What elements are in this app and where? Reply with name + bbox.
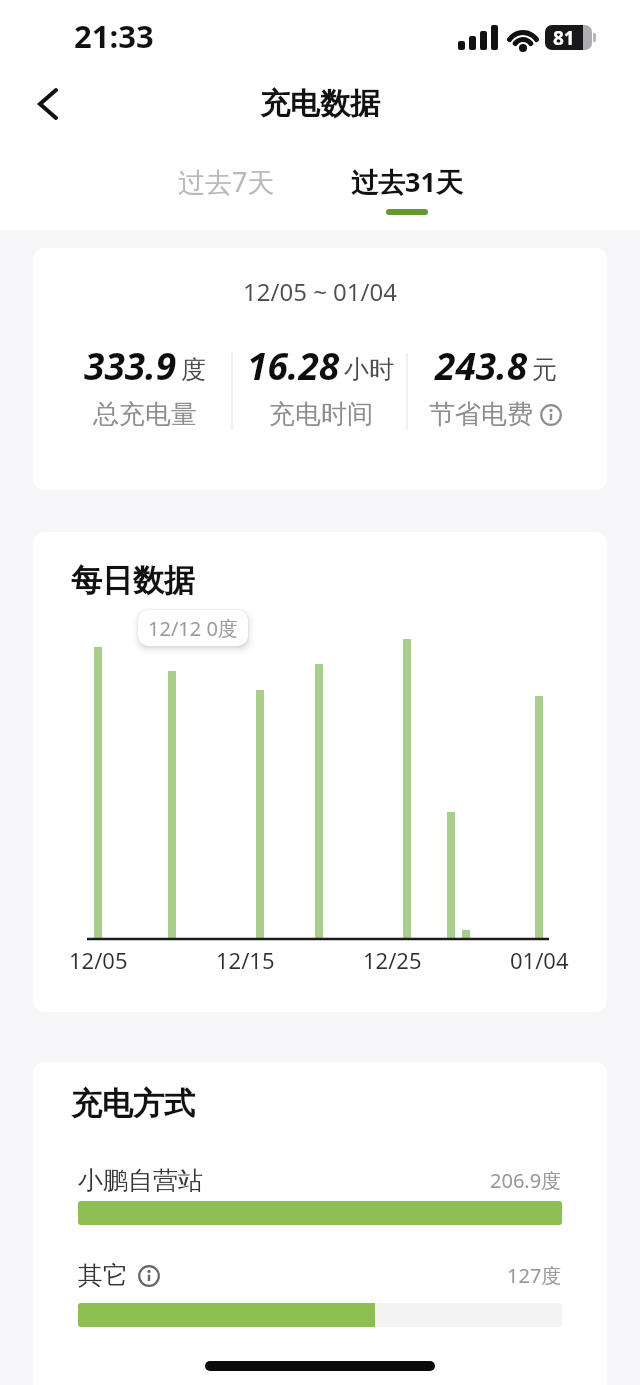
- staticText: 12/25: [363, 945, 422, 975]
- staticText: 01/04: [510, 945, 569, 975]
- staticText: 充电方式: [71, 1084, 195, 1123]
- staticText: 243.8: [435, 340, 528, 390]
- staticText: 21:33: [74, 15, 154, 57]
- staticText: 小鹏自营站: [78, 1165, 203, 1196]
- button[interactable]: 过去7天: [178, 163, 275, 200]
- staticText: 206.9度: [490, 1167, 562, 1194]
- staticText: 充电数据: [260, 85, 380, 123]
- staticText: 度: [181, 354, 206, 385]
- staticText: 每日数据: [71, 561, 195, 600]
- button[interactable]: 过去31天: [351, 163, 463, 215]
- staticText: 12/15: [216, 945, 275, 975]
- staticText: 12/05: [69, 945, 128, 975]
- staticText: 元: [532, 354, 557, 385]
- staticText: 充电时间: [269, 398, 373, 431]
- staticText: 总充电量: [93, 398, 197, 431]
- staticText: 12/12 0度: [148, 615, 238, 642]
- staticText: 127度: [507, 1262, 562, 1289]
- staticText: 81: [553, 25, 575, 50]
- staticText: 节省电费: [429, 398, 533, 431]
- staticText: 过去7天: [178, 163, 275, 200]
- button[interactable]: [26, 82, 70, 126]
- staticText: 12/05 ~ 01/04: [33, 275, 607, 308]
- staticText: 其它: [78, 1260, 128, 1291]
- staticText: 16.28: [247, 340, 340, 390]
- staticText: 过去31天: [351, 163, 463, 200]
- staticText: 333.9: [84, 340, 177, 390]
- staticText: 小时: [344, 354, 394, 385]
